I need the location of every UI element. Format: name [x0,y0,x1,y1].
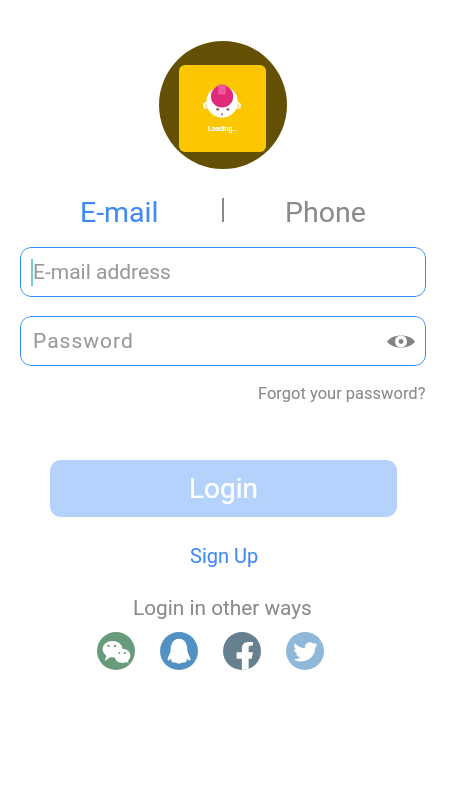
staticText: Sign Up [190,544,259,567]
staticText: E-mail address [33,260,171,285]
button[interactable]: Show password [385,325,417,357]
button[interactable]: E-mail [74,191,165,229]
staticText: Phone [285,196,366,224]
button[interactable]: Forgot your password? [258,384,426,403]
button[interactable]: WeChat login [97,632,135,670]
button[interactable]: Login [50,460,397,517]
staticText: Password [33,329,134,354]
button[interactable]: Password [20,316,426,366]
button[interactable]: Facebook login [223,632,261,670]
staticText: E-mail [80,196,159,224]
button[interactable]: QQ login [160,632,198,670]
button[interactable]: Sign Up [184,542,265,569]
staticText: Loading... [208,125,238,133]
button[interactable]: Twitter login [286,632,324,670]
staticText: Login in other ways [133,596,312,620]
button[interactable]: Phone [279,191,372,229]
staticText: Forgot your password? [258,384,426,403]
button[interactable]: E-mail address [20,247,426,297]
staticText: Login [189,472,259,505]
